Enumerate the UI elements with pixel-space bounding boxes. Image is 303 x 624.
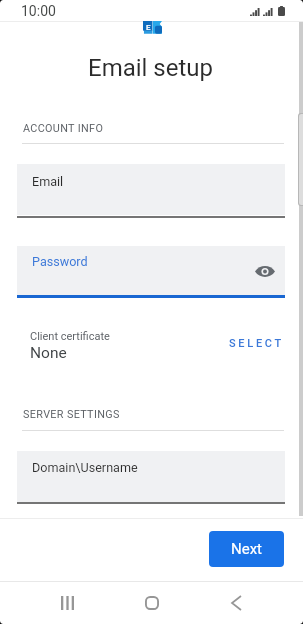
staticText: ACCOUNT INFO	[23, 122, 104, 135]
button[interactable]	[17, 451, 285, 502]
staticText: Domain\Username	[32, 460, 138, 475]
button[interactable]: Recent apps	[43, 582, 92, 624]
button[interactable]: Home	[127, 582, 176, 624]
button[interactable]: SELECT	[223, 331, 289, 355]
button[interactable]	[17, 164, 285, 215]
staticText: 10:00	[21, 3, 56, 19]
button[interactable]: Back	[212, 582, 261, 624]
staticText: E	[146, 23, 151, 32]
button[interactable]: Show password	[251, 258, 279, 284]
staticText: Client certificate	[30, 330, 110, 343]
staticText: Email	[32, 174, 64, 189]
staticText: Email setup	[88, 54, 214, 82]
staticText: SERVER SETTINGS	[23, 408, 120, 421]
button[interactable]: Show password	[17, 246, 285, 295]
staticText: SELECT	[229, 337, 284, 350]
staticText: None	[30, 344, 67, 362]
staticText: Next	[231, 540, 263, 558]
staticText: Password	[32, 254, 88, 269]
button[interactable]	[17, 322, 285, 364]
button[interactable]: Next	[209, 531, 284, 567]
